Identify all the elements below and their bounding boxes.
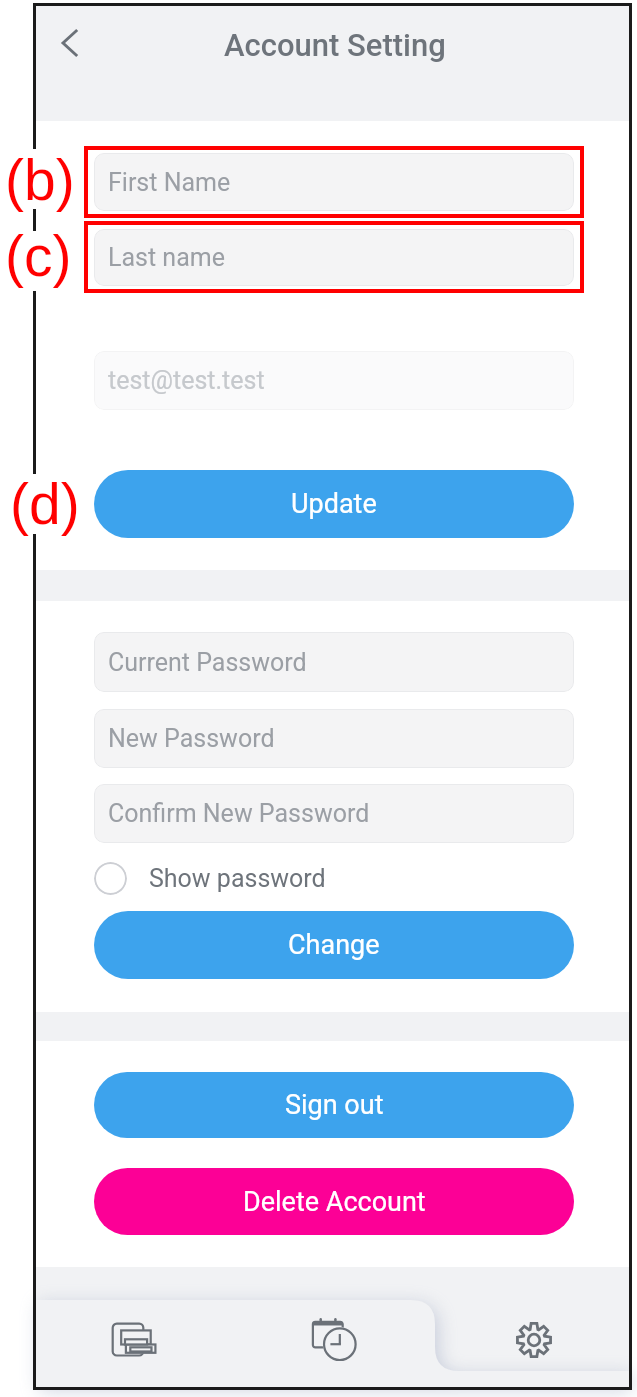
staticText: Update — [291, 488, 377, 520]
button[interactable]: Current Password — [94, 632, 574, 692]
button[interactable]: Schedule — [233, 1300, 431, 1387]
staticText: Current Password — [108, 648, 307, 677]
staticText: Change — [288, 929, 380, 961]
button[interactable]: Back — [39, 15, 95, 71]
staticText: Account Setting — [224, 27, 446, 63]
button[interactable]: test@test.test — [94, 351, 574, 410]
button[interactable]: Last name — [94, 229, 574, 286]
button[interactable]: Show password — [94, 852, 424, 904]
button[interactable]: Settings — [431, 1300, 629, 1387]
staticText: test@test.test — [108, 366, 265, 395]
staticText: (d) — [10, 472, 80, 536]
staticText: (c) — [5, 224, 72, 288]
button[interactable]: First Name — [94, 153, 574, 211]
button[interactable]: Print jobs — [36, 1300, 233, 1387]
staticText: (b) — [5, 148, 75, 212]
staticText: First Name — [108, 168, 231, 197]
staticText: Sign out — [285, 1089, 384, 1121]
staticText: Last name — [108, 243, 225, 272]
button[interactable]: Sign out — [94, 1072, 574, 1138]
button[interactable]: Delete Account — [94, 1168, 574, 1235]
button[interactable]: Confirm New Password — [94, 784, 574, 843]
staticText: New Password — [108, 724, 275, 753]
button[interactable]: Change — [94, 911, 574, 979]
button[interactable]: New Password — [94, 709, 574, 768]
staticText: Delete Account — [243, 1186, 426, 1218]
staticText: Show password — [149, 864, 326, 893]
button[interactable]: Update — [94, 470, 574, 538]
staticText: Confirm New Password — [108, 799, 370, 828]
